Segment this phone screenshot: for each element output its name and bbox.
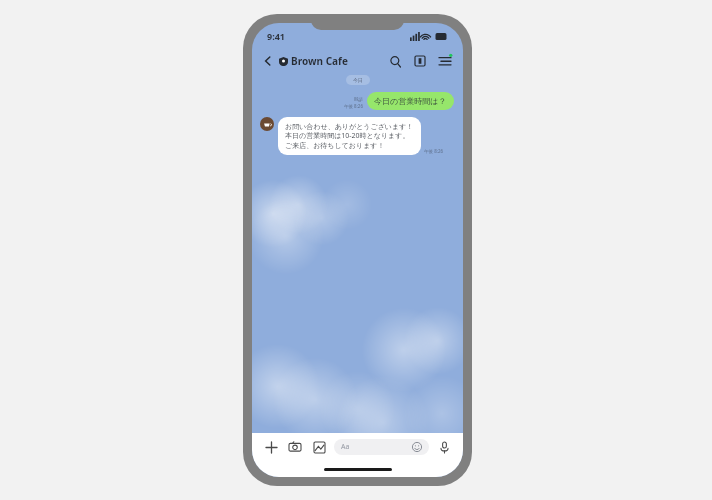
button[interactable]: Aa [334,439,429,455]
staticText: 午後 8:26 [424,148,444,154]
button[interactable]: Brown Cafe profile [260,117,274,131]
staticText: 9:41 [267,30,285,42]
button[interactable]: Menu [436,52,454,70]
staticText: 今日 [353,77,363,83]
staticText: Aa [341,442,350,452]
button[interactable]: Add [262,438,280,456]
staticText: 本日の営業時間は10-20時となります。 [285,131,410,141]
staticText: ご来店、お待ちしております！ [285,141,385,150]
button[interactable]: Photos [310,438,328,456]
staticText: 午後 8:26 [343,103,363,109]
button[interactable]: Album [411,52,429,70]
button[interactable]: Voice message [435,438,453,456]
button[interactable]: Camera [286,438,304,456]
button[interactable]: 今日 [353,77,363,83]
button[interactable]: 今日の営業時間は？ [367,92,454,110]
staticText: 既読 [354,97,363,103]
button[interactable]: Search [386,52,404,70]
staticText: 今日の営業時間は？ [374,96,447,106]
button[interactable]: お問い合わせ、ありがとうございます！ [278,117,421,155]
staticText: お問い合わせ、ありがとうございます！ [285,122,414,131]
button[interactable]: Back [260,53,276,69]
staticText: Brown Cafe [291,54,348,68]
